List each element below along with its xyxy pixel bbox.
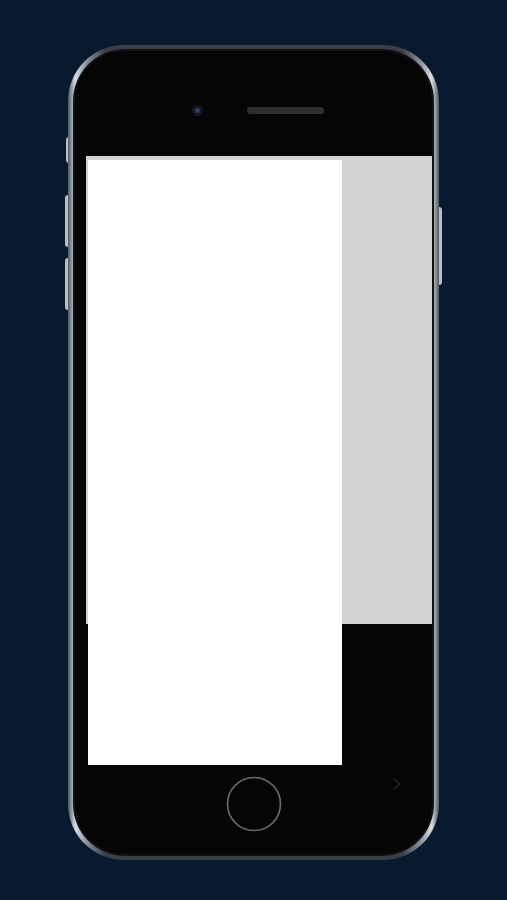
button[interactable]: Next page xyxy=(380,767,414,801)
button[interactable]: Home xyxy=(226,776,282,832)
